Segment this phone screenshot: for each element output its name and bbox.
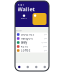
staticText: Rent bbox=[21, 45, 28, 48]
staticText: Salary bbox=[21, 41, 27, 44]
button[interactable]: Tab bbox=[32, 66, 40, 68]
staticText: 9:41 bbox=[17, 3, 24, 6]
staticText: RECENT bbox=[16, 30, 22, 32]
button[interactable]: Groceries bbox=[15, 32, 48, 36]
button[interactable]: Transport bbox=[15, 36, 48, 40]
staticText: Transport bbox=[21, 37, 33, 40]
staticText: Groceries bbox=[21, 33, 34, 36]
staticText: Wallet bbox=[17, 6, 34, 13]
staticText: Coffee bbox=[21, 49, 31, 52]
staticText: +$1200 bbox=[41, 42, 47, 43]
staticText: Card bbox=[34, 25, 38, 27]
button[interactable]: Rent bbox=[15, 44, 48, 48]
button[interactable]: Salary bbox=[15, 40, 48, 44]
staticText: Balance bbox=[21, 17, 27, 19]
button[interactable]: Coffee bbox=[15, 48, 48, 52]
button[interactable]: Tab bbox=[23, 66, 32, 68]
button[interactable]: Tab bbox=[15, 66, 23, 68]
button[interactable]: Tab bbox=[40, 66, 49, 68]
